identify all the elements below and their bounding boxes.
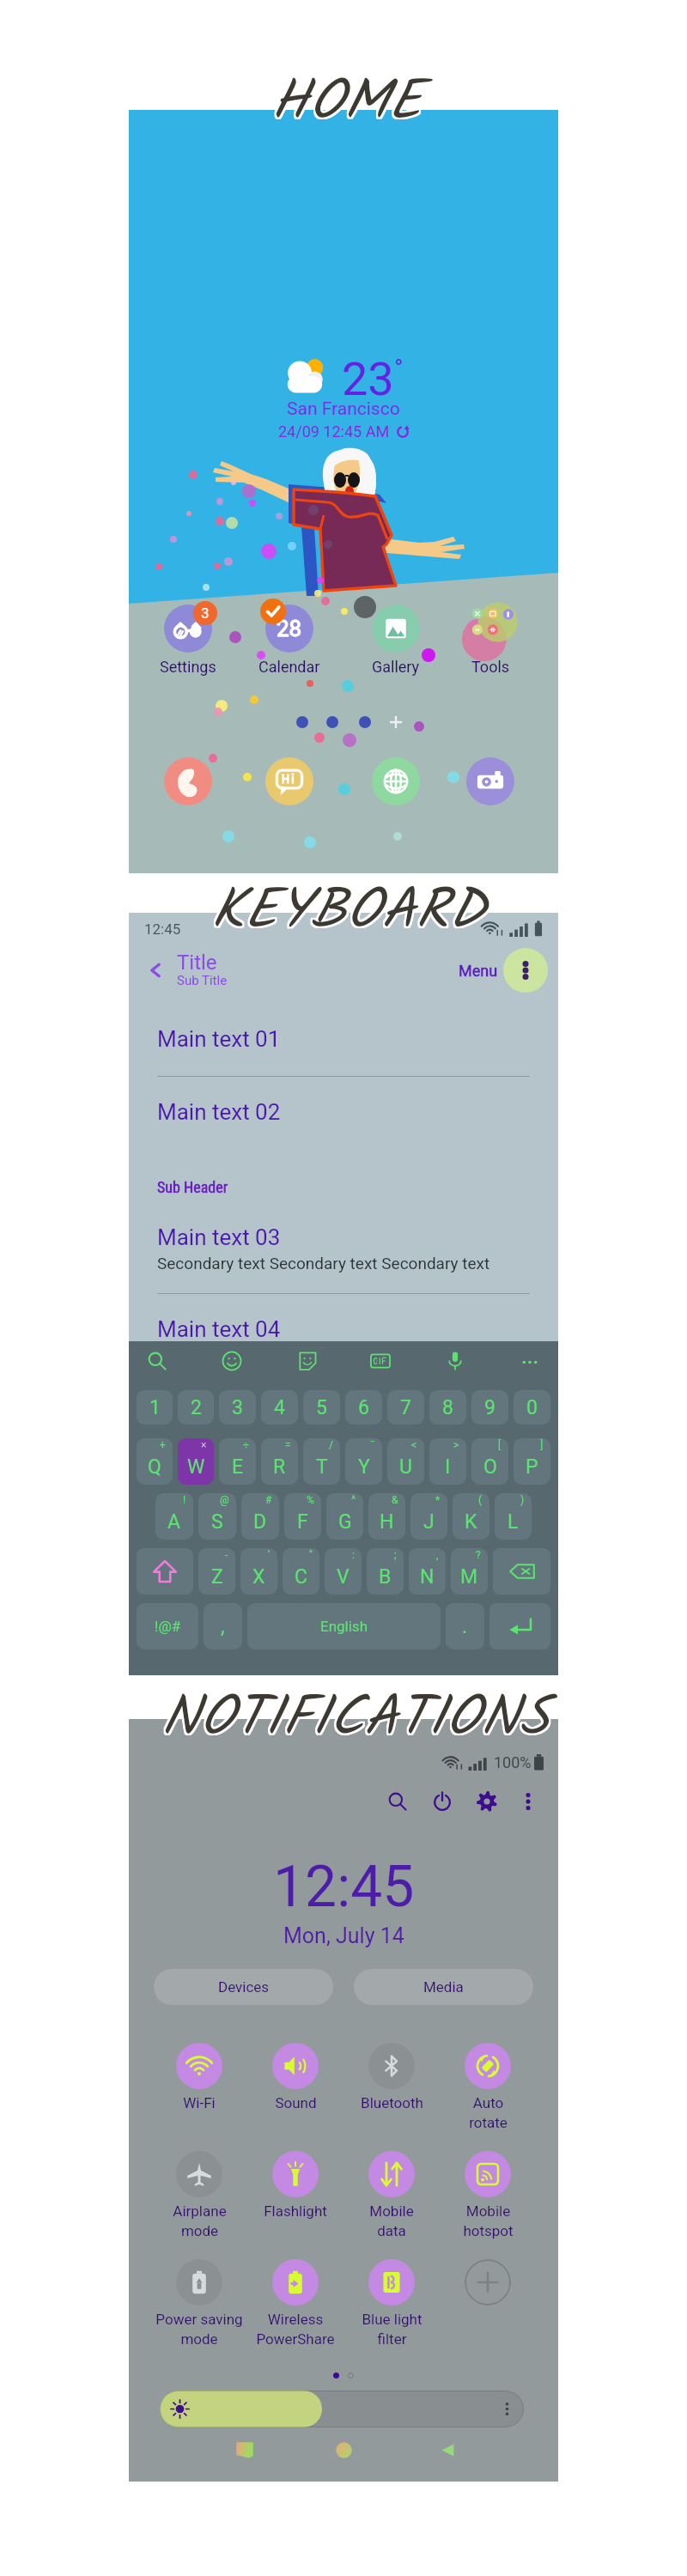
button[interactable]: > [429,1438,466,1485]
button[interactable]: Menu [455,955,502,987]
staticText: E [232,1455,244,1479]
button[interactable] [160,2391,524,2427]
button[interactable] [440,2259,536,2328]
button[interactable]: Settings [472,1787,502,1816]
button[interactable]: < [387,1438,424,1485]
button[interactable]: ' [240,1548,277,1595]
button[interactable]: 5 [303,1390,340,1425]
button[interactable]: 3 [143,594,233,681]
button[interactable]: Sound [247,2043,343,2111]
staticText: D [253,1510,267,1534]
button[interactable]: : [325,1548,362,1595]
button[interactable]: ? [451,1548,488,1595]
button[interactable]: % [284,1493,321,1540]
button[interactable]: More [515,1346,544,1376]
button[interactable]: Camera [466,757,514,805]
staticText: ; [394,1549,397,1561]
staticText: ! [183,1494,186,1506]
button[interactable]: ! [155,1493,193,1540]
button[interactable]: Bluetooth [343,2043,440,2111]
button[interactable]: Devices [154,1969,333,2005]
button[interactable]: 8 [429,1390,466,1425]
button[interactable]: Gallery [351,594,441,681]
button[interactable]: ÷ [219,1438,256,1485]
button[interactable]: & [368,1493,405,1540]
button[interactable]: Back [141,956,170,985]
staticText: ¯ [370,1439,375,1451]
button[interactable]: Flashlight [247,2151,343,2220]
button[interactable]: # [241,1493,279,1540]
button[interactable]: / [303,1438,340,1485]
button[interactable]: - [198,1548,235,1595]
staticText: Auto rotate [469,2094,508,2131]
button[interactable]: 7 [387,1390,424,1425]
button[interactable]: ^ [326,1493,363,1540]
button[interactable]: Voice input [441,1346,470,1376]
button[interactable]: Main text 03 [129,1196,558,1294]
button[interactable]: + [137,1438,173,1485]
button[interactable]: ; [367,1548,404,1595]
button[interactable]: 4 [261,1390,298,1425]
button[interactable]: @ [198,1493,236,1540]
button[interactable]: Media [354,1969,533,2005]
button[interactable]: Airplane mode [151,2151,247,2239]
button[interactable]: Power [428,1787,457,1816]
button[interactable]: ) [495,1493,532,1540]
button[interactable]: English [247,1603,441,1649]
button[interactable]: Enter [489,1603,550,1649]
staticText: NOTIFICATIONS [163,1674,551,1765]
staticText: G [338,1510,352,1534]
button[interactable]: Search [143,1346,172,1376]
button[interactable]: Stickers [292,1346,321,1376]
button[interactable]: Phone [164,757,212,805]
button[interactable]: Recents [229,2434,260,2465]
button[interactable]: 0 [514,1390,550,1425]
button[interactable]: Auto rotate [440,2043,536,2131]
button[interactable]: Search [383,1787,412,1816]
staticText: Main text 01 [157,1026,281,1052]
staticText: San Francisco [287,398,400,420]
button[interactable]: Wi-Fi [151,2043,247,2111]
button[interactable]: Mobile data [343,2151,440,2239]
button[interactable]: ] [514,1438,550,1485]
button[interactable]: ( [453,1493,489,1540]
button[interactable]: 1 [137,1390,173,1425]
button[interactable]: GIF [366,1346,395,1376]
button[interactable]: 2 [178,1390,214,1425]
button[interactable]: " [283,1548,319,1595]
button[interactable]: Home [328,2434,359,2465]
button[interactable]: Back [432,2434,463,2465]
button[interactable]: 9 [471,1390,508,1425]
button[interactable]: Emoji [217,1346,246,1376]
button[interactable]: Tools [446,594,535,681]
button[interactable]: Main text 02 [129,1077,558,1133]
button[interactable]: × [178,1438,214,1485]
button[interactable]: More options [503,948,548,993]
staticText: Y [358,1455,370,1479]
button[interactable]: [ [471,1438,508,1485]
button[interactable]: , [409,1548,446,1595]
button[interactable]: Internet [372,757,420,805]
button[interactable]: . [446,1603,484,1649]
staticText: NOTIFICATIONS [161,1674,550,1765]
button[interactable]: * [410,1493,447,1540]
button[interactable]: More [514,1787,543,1816]
staticText: H [380,1510,394,1534]
button[interactable]: Wireless PowerShare [247,2259,343,2348]
button[interactable]: Shift [137,1548,193,1595]
button[interactable]: Power saving mode [151,2259,247,2348]
button[interactable]: Messages [265,757,313,805]
button[interactable]: = [261,1438,298,1485]
button[interactable]: !@# [137,1603,198,1649]
button[interactable]: Mobile hotspot [440,2151,536,2239]
button[interactable]: Main text 01 [129,996,558,1077]
button[interactable]: Blue light filter [343,2259,440,2348]
staticText: Main text 02 [157,1099,281,1125]
button[interactable]: Main text 04 [129,1294,558,1351]
button[interactable]: ¯ [345,1438,382,1485]
button[interactable]: , [204,1603,242,1649]
button[interactable]: 28 [245,594,334,681]
button[interactable]: Backspace [493,1548,550,1595]
button[interactable]: 3 [219,1390,256,1425]
button[interactable]: 6 [345,1390,382,1425]
